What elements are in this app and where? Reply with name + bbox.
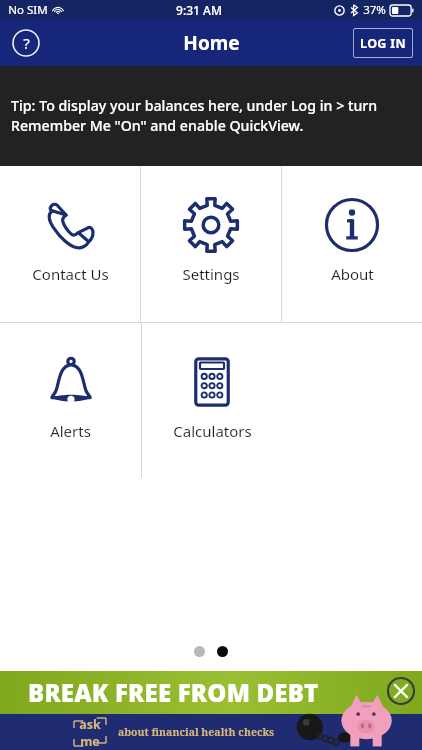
staticText: Settings <box>182 264 240 284</box>
button[interactable]: Calculators <box>142 323 282 478</box>
button[interactable]: BREAK FREE FROM DEBT <box>0 671 422 750</box>
staticText: BREAK FREE FROM DEBT <box>28 676 319 709</box>
button[interactable]: About <box>282 166 422 322</box>
button[interactable] <box>194 646 205 657</box>
staticText: No SIM <box>8 2 48 18</box>
staticText: 9:31 AM <box>176 2 222 18</box>
button[interactable]: LOG IN <box>353 28 413 58</box>
staticText: Home <box>183 30 240 56</box>
button[interactable]: Tip: To display your balances here, unde… <box>0 66 422 166</box>
staticText: Contact Us <box>32 264 109 284</box>
staticText: Alerts <box>50 421 91 441</box>
staticText: ask <box>79 716 101 733</box>
button[interactable]: Close ad <box>386 676 416 706</box>
staticText: ? <box>23 33 30 53</box>
staticText: Calculators <box>173 421 252 441</box>
staticText: 37% <box>363 2 386 18</box>
button[interactable] <box>217 646 228 657</box>
staticText: Tip: To display your balances here, unde… <box>11 96 411 135</box>
button[interactable]: Help <box>8 25 44 61</box>
staticText: about financial health checks <box>118 725 275 739</box>
staticText: me <box>80 733 100 748</box>
staticText: LOG IN <box>360 35 406 52</box>
button[interactable]: Contact Us <box>0 166 140 322</box>
button[interactable]: Settings <box>141 166 281 322</box>
button[interactable]: Alerts <box>0 323 141 478</box>
staticText: About <box>331 264 374 284</box>
